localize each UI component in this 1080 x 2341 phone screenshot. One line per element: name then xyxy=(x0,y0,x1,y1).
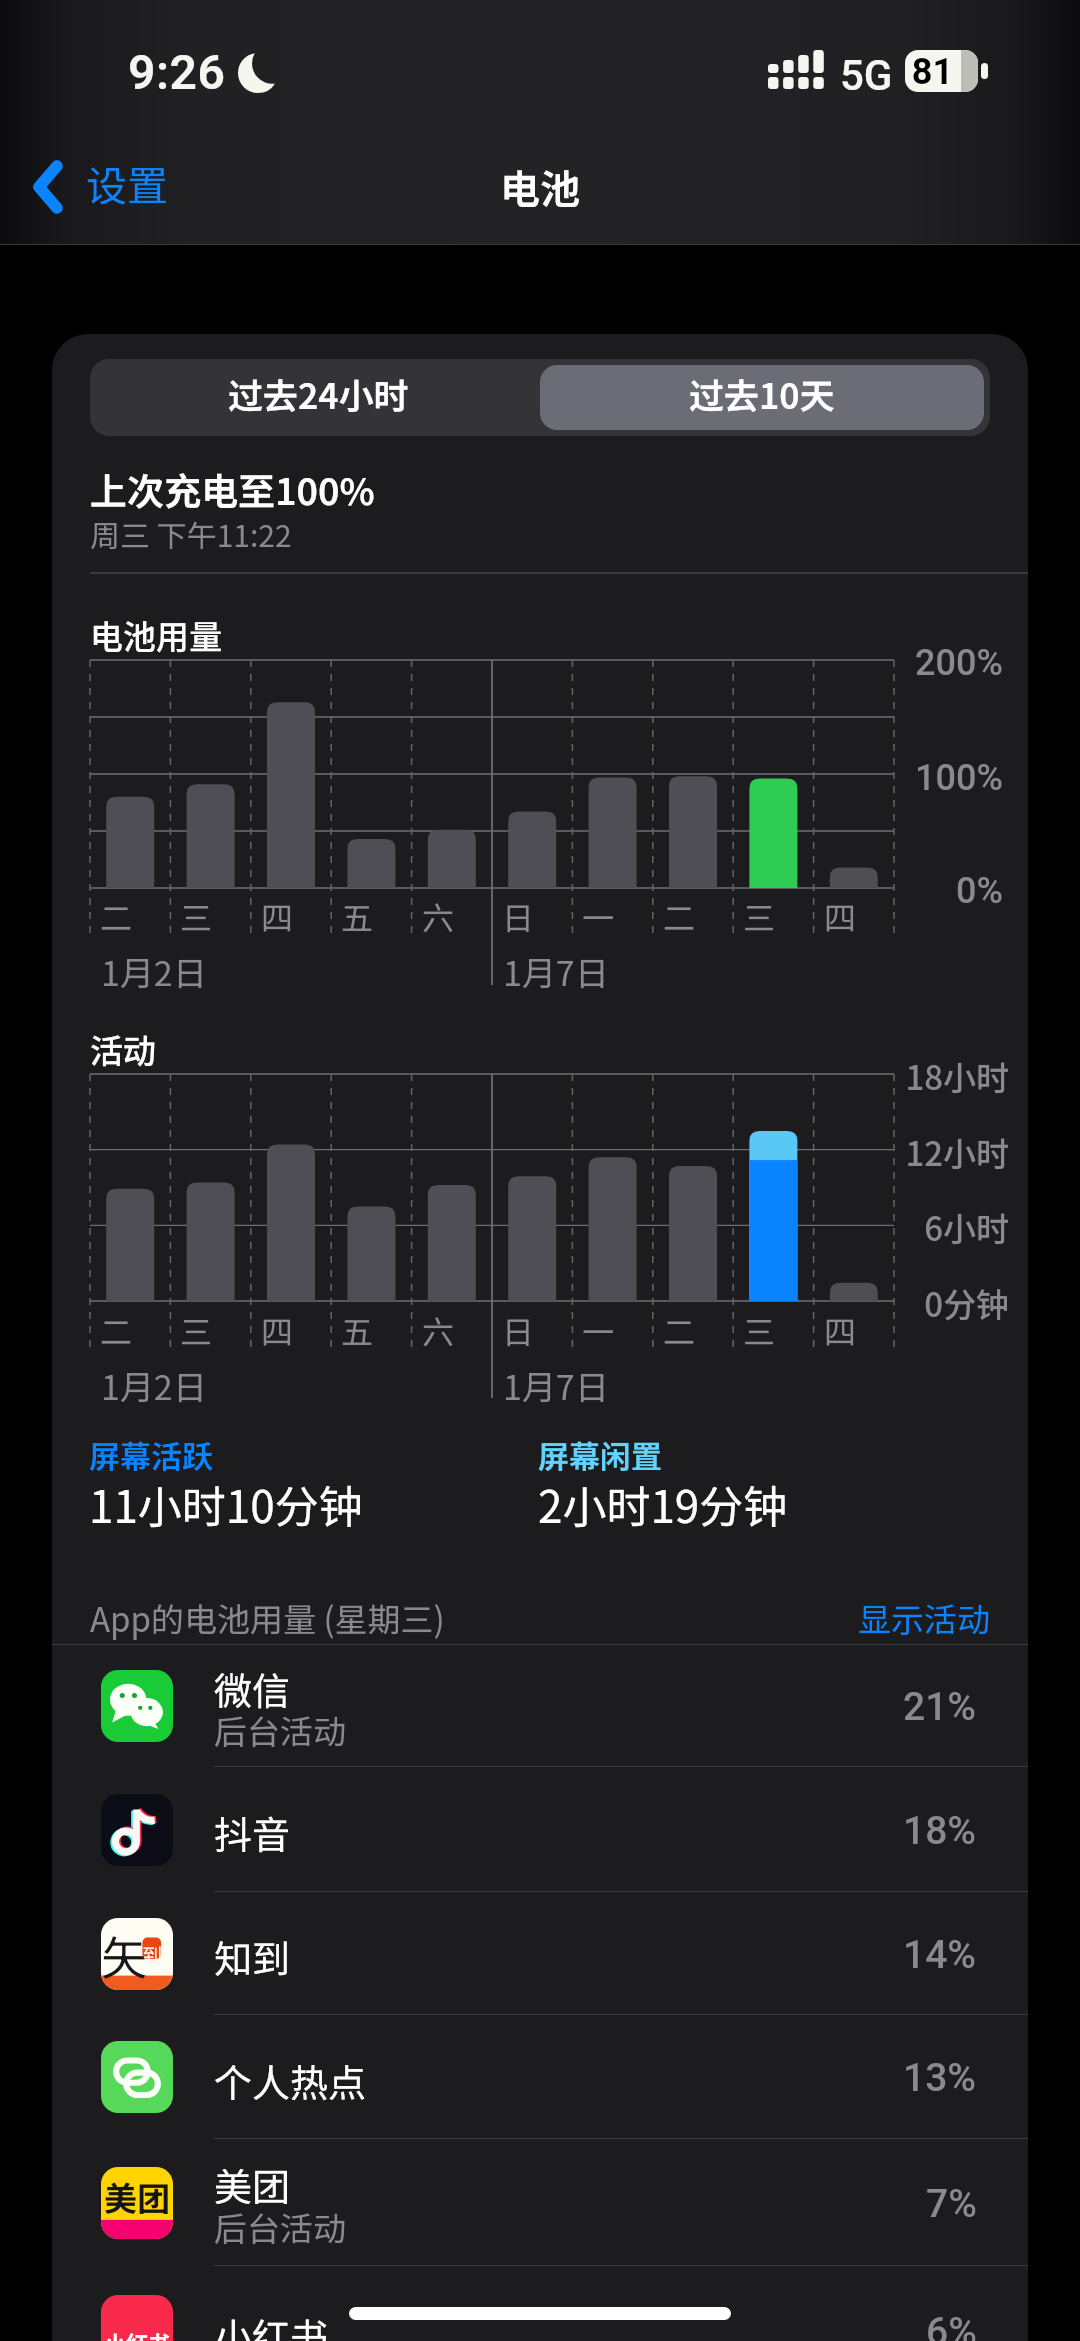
staticText: 美团 xyxy=(214,2157,291,2212)
staticText: App的电池用量 (星期三) xyxy=(90,1594,445,1642)
staticText: 11小时10分钟 xyxy=(89,1472,363,1536)
staticText: 后台活动 xyxy=(214,1706,346,1754)
staticText: 6% xyxy=(926,2309,977,2341)
staticText: 9:26 xyxy=(128,44,226,100)
button[interactable]: 美团 xyxy=(52,2139,1028,2266)
staticText: 三 xyxy=(743,1307,776,1353)
staticText: 100% xyxy=(696,757,1003,799)
staticText: 1月2日 xyxy=(101,1361,207,1410)
button[interactable]: 矢 xyxy=(52,1892,1028,2015)
staticText: 二 xyxy=(100,1307,133,1353)
button[interactable]: 返回 设置 xyxy=(22,151,168,215)
button[interactable]: 微信 xyxy=(52,1645,1028,1767)
button[interactable]: 抖音 xyxy=(52,1767,1028,1892)
staticText: 0% xyxy=(696,870,1003,912)
staticText: 200% xyxy=(696,642,1003,684)
staticText: 屏幕活跃 xyxy=(89,1432,213,1477)
staticText: 一 xyxy=(582,893,615,939)
staticText: 18% xyxy=(903,1808,977,1854)
staticText: 18小时 xyxy=(702,1052,1009,1100)
staticText: 81 xyxy=(905,51,961,92)
staticText: 五 xyxy=(341,893,374,939)
staticText: 三 xyxy=(743,893,776,939)
staticText: 1月2日 xyxy=(101,947,207,996)
staticText: 1月7日 xyxy=(503,947,609,996)
staticText: 上次充电至100% xyxy=(90,462,375,516)
staticText: 13% xyxy=(903,2055,977,2101)
staticText: 0分钟 xyxy=(702,1279,1009,1327)
button[interactable]: 显示活动 xyxy=(690,1594,990,1642)
staticText: 2小时19分钟 xyxy=(538,1472,788,1536)
button[interactable]: 小红书 xyxy=(52,2266,1028,2341)
button[interactable]: 过去10天 xyxy=(540,365,984,430)
staticText: 二 xyxy=(663,893,696,939)
staticText: 矢 xyxy=(101,1922,147,1989)
staticText: 四 xyxy=(824,1307,857,1353)
staticText: 周三 下午11:22 xyxy=(90,512,292,555)
staticText: 美团 xyxy=(101,2173,173,2221)
staticText: 四 xyxy=(824,893,857,939)
staticText: 后台活动 xyxy=(214,2203,346,2251)
staticText: 设置 xyxy=(86,153,168,212)
staticText: 日 xyxy=(502,1307,535,1353)
staticText: 14% xyxy=(903,1932,977,1978)
staticText: 日 xyxy=(502,893,535,939)
staticText: 个人热点 xyxy=(214,2053,367,2108)
staticText: 屏幕闲置 xyxy=(538,1432,662,1477)
staticText: 6小时 xyxy=(702,1203,1009,1251)
button[interactable]: 个人热点 xyxy=(52,2015,1028,2139)
staticText: 电池用量 xyxy=(90,611,222,659)
staticText: 21% xyxy=(903,1684,977,1730)
staticText: 12小时 xyxy=(702,1128,1009,1176)
staticText: 三 xyxy=(180,893,213,939)
staticText: 抖音 xyxy=(214,1805,291,1860)
staticText: 到 xyxy=(142,1940,162,1969)
button[interactable]: 过去24小时 xyxy=(96,365,540,430)
staticText: 电池 xyxy=(500,158,580,216)
staticText: 四 xyxy=(261,1307,294,1353)
staticText: 小红书 xyxy=(214,2307,329,2341)
staticText: 过去24小时 xyxy=(228,368,409,419)
staticText: 五 xyxy=(341,1307,374,1353)
staticText: 三 xyxy=(180,1307,213,1353)
staticText: 小红书 xyxy=(101,2326,173,2341)
staticText: 微信 xyxy=(214,1661,291,1716)
staticText: 知到 xyxy=(214,1929,291,1984)
staticText: 7% xyxy=(926,2181,977,2227)
staticText: 一 xyxy=(582,1307,615,1353)
staticText: 二 xyxy=(100,893,133,939)
staticText: 活动 xyxy=(90,1025,156,1073)
staticText: 5G xyxy=(840,51,893,100)
staticText: 四 xyxy=(261,893,294,939)
staticText: 过去10天 xyxy=(689,368,835,419)
staticText: 六 xyxy=(422,1307,455,1353)
staticText: 二 xyxy=(663,1307,696,1353)
staticText: 1月7日 xyxy=(503,1361,609,1410)
staticText: 六 xyxy=(422,893,455,939)
